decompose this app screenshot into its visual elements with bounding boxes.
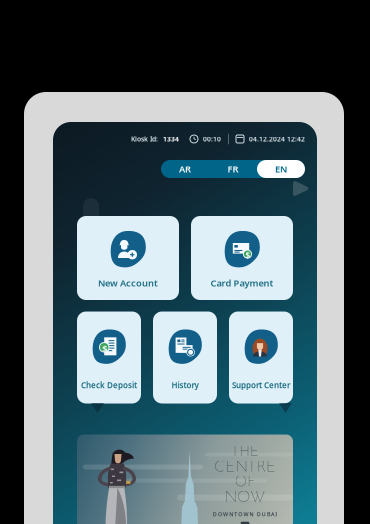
button[interactable]: Downtown Dubai advertisement — [77, 434, 293, 524]
staticText: Check Deposit — [81, 380, 137, 390]
staticText: $ — [102, 343, 107, 355]
staticText: New Account — [98, 277, 158, 289]
button[interactable]: Support Center — [229, 311, 293, 403]
button[interactable]: EN — [257, 160, 305, 178]
staticText: $ — [246, 250, 251, 261]
button[interactable]: History — [153, 311, 217, 403]
staticText: FR — [227, 163, 238, 175]
staticText: Card Payment — [210, 277, 273, 289]
staticText: Kiosk Id: — [131, 135, 158, 143]
staticText: Support Center — [232, 380, 290, 390]
button[interactable]: New Account — [77, 216, 179, 300]
button[interactable]: $ — [191, 216, 293, 300]
staticText: DOWNTOWN DUBAI — [213, 511, 277, 518]
staticText: AR — [179, 163, 191, 175]
button[interactable]: AR — [161, 160, 209, 178]
staticText: OF — [235, 476, 255, 490]
button[interactable]: $ — [77, 311, 141, 403]
staticText: 00:10 — [203, 135, 221, 143]
staticText: NOW — [225, 490, 265, 506]
button[interactable]: FR — [209, 160, 257, 178]
staticText: History — [171, 380, 198, 390]
staticText: 1334 — [163, 135, 179, 143]
staticText: CENTRE — [214, 460, 276, 475]
staticText: 04.12.2024 12:42 — [249, 135, 305, 143]
staticText: EN — [275, 163, 287, 175]
staticText: THE — [231, 445, 259, 459]
